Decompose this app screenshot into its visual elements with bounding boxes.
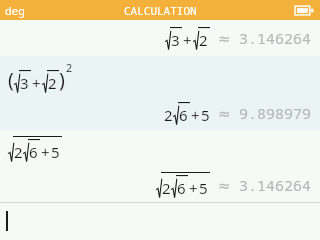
staticText: + (32, 73, 41, 93)
staticText: 2 (66, 60, 73, 75)
staticText: ) (59, 66, 65, 93)
staticText: 3 (20, 73, 29, 93)
staticText: + (183, 30, 192, 50)
staticText: ≈ (218, 105, 231, 122)
button[interactable]: 2 (0, 168, 320, 202)
staticText: 9.898979 (239, 103, 312, 123)
staticText: 6 (29, 142, 38, 162)
staticText: + (41, 142, 50, 162)
staticText: deg (5, 3, 25, 18)
staticText: ≈ (218, 30, 231, 47)
other: Battery level (295, 5, 314, 16)
staticText: 2 (14, 142, 23, 162)
staticText: + (191, 105, 200, 125)
button[interactable] (0, 203, 320, 240)
staticText: 6 (177, 178, 186, 198)
staticText: 2 (162, 178, 171, 198)
staticText: 6 (179, 105, 188, 125)
staticText: 5 (199, 178, 208, 198)
staticText: 3.146264 (239, 28, 312, 48)
staticText: ( (8, 66, 14, 93)
staticText: 2 (199, 30, 208, 50)
staticText: CALCULATION (124, 3, 197, 18)
button[interactable]: 2 (0, 130, 320, 168)
staticText: 2 (48, 73, 57, 93)
staticText: 3 (171, 30, 180, 50)
button[interactable]: 3 (0, 20, 320, 56)
button[interactable]: 2 (0, 96, 320, 130)
staticText: 5 (201, 105, 210, 125)
staticText: ≈ (218, 177, 231, 194)
staticText: 5 (51, 142, 60, 162)
staticText: 2 (164, 105, 173, 125)
staticText: 3.146264 (239, 175, 312, 195)
button[interactable]: ( (0, 56, 320, 96)
staticText: + (189, 178, 198, 198)
